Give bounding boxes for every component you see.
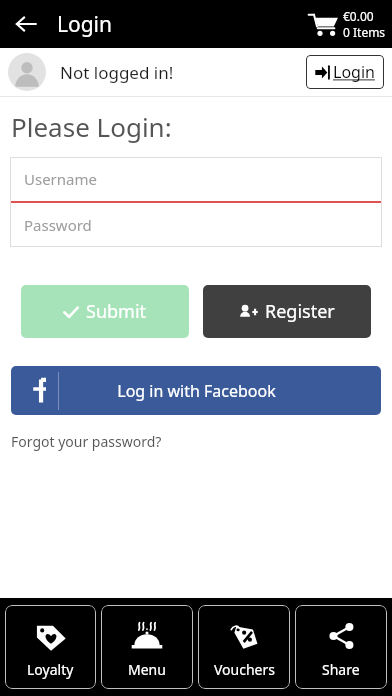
staticText: Share: [322, 660, 360, 679]
staticText: Username: [24, 169, 97, 189]
button[interactable]: Share: [295, 605, 387, 689]
button[interactable]: Forgot your password?: [11, 432, 162, 451]
button[interactable]: Submit: [21, 285, 189, 338]
button[interactable]: Vouchers: [198, 605, 290, 689]
staticText: Please Login:: [11, 109, 172, 144]
button[interactable]: Loyalty: [5, 605, 96, 689]
staticText: Login: [57, 10, 113, 39]
staticText: Vouchers: [214, 660, 275, 679]
staticText: Not logged in!: [60, 61, 174, 84]
button[interactable]: Username: [10, 157, 382, 201]
button[interactable]: Log in with Facebook: [11, 366, 381, 415]
staticText: Login: [333, 61, 375, 83]
button[interactable]: Back: [6, 4, 46, 44]
button[interactable]: Register: [203, 285, 371, 338]
button[interactable]: Login: [306, 55, 384, 89]
staticText: Submit: [86, 299, 147, 324]
staticText: Log in with Facebook: [117, 380, 276, 402]
staticText: Password: [24, 215, 92, 235]
button[interactable]: Menu: [101, 605, 193, 689]
button[interactable]: Cart: [308, 8, 386, 40]
staticText: Menu: [128, 660, 166, 679]
button[interactable]: Password: [10, 203, 382, 247]
staticText: 0 Items: [343, 24, 386, 40]
staticText: €0.00: [343, 8, 374, 24]
staticText: Loyalty: [27, 660, 74, 679]
staticText: Register: [265, 299, 335, 324]
